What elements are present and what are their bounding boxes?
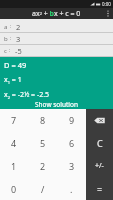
button[interactable]: Show solution — [0, 100, 113, 109]
staticText: ax2 + bx + c = 0 — [32, 9, 81, 19]
button[interactable]: 4 — [0, 131, 28, 154]
button[interactable]: 5 — [28, 131, 57, 154]
button[interactable]: More options — [102, 8, 113, 19]
staticText: Show solution — [35, 100, 78, 109]
staticText: x2 = -2½ = -2.5 — [4, 90, 50, 100]
staticText: 2 — [40, 160, 46, 172]
staticText: = — [97, 183, 103, 195]
staticText: 7 — [11, 114, 17, 126]
staticText: 1 — [11, 160, 17, 172]
staticText: . — [70, 183, 73, 195]
staticText: +/- — [95, 161, 104, 171]
staticText: 4 — [11, 137, 17, 149]
staticText: 9 — [69, 114, 75, 126]
staticText: 2 — [16, 22, 21, 32]
staticText: 8 — [40, 114, 46, 126]
button[interactable]: . — [57, 177, 86, 200]
button[interactable]: 6 — [57, 131, 86, 154]
staticText: x1 = 1 — [4, 75, 22, 85]
staticText: 5 — [40, 137, 46, 149]
button[interactable]: / — [28, 177, 57, 200]
button[interactable]: 7 — [0, 109, 28, 131]
staticText: a — [4, 23, 8, 31]
staticText: C — [97, 137, 103, 149]
staticText: -5 — [15, 46, 22, 56]
button[interactable]: = — [86, 177, 113, 200]
button[interactable]: 3 — [57, 154, 86, 177]
button[interactable]: b — [0, 33, 113, 45]
staticText: 0 — [11, 183, 17, 195]
staticText: : — [10, 35, 12, 42]
staticText: : — [10, 23, 12, 30]
button[interactable]: Backspace — [86, 109, 113, 131]
button[interactable]: 8 — [28, 109, 57, 131]
staticText: 3 — [69, 160, 75, 172]
staticText: : — [9, 47, 11, 54]
button[interactable]: 1 — [0, 154, 28, 177]
staticText: 6 — [69, 137, 75, 149]
button[interactable]: a — [0, 21, 113, 33]
button[interactable]: C — [86, 131, 113, 154]
staticText: b — [4, 35, 8, 43]
staticText: / — [41, 183, 45, 195]
staticText: 3 — [16, 34, 21, 44]
staticText: c — [4, 47, 7, 55]
button[interactable]: 9 — [57, 109, 86, 131]
button[interactable]: +/- — [86, 154, 113, 177]
button[interactable]: 0 — [0, 177, 28, 200]
staticText: 0:00 — [102, 1, 111, 7]
button[interactable]: 2 — [28, 154, 57, 177]
staticText: D = 49 — [4, 60, 27, 70]
button[interactable]: c — [0, 45, 113, 57]
